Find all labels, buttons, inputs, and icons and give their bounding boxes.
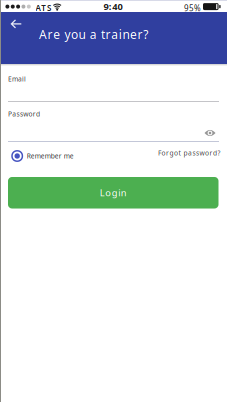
staticText: 9:40 [103, 0, 123, 13]
button[interactable]: Back [0, 13, 28, 35]
staticText: Login [100, 187, 127, 199]
button[interactable]: Show password [202, 127, 218, 139]
staticText: Are you a trainer? [39, 26, 148, 42]
button[interactable]: Email [8, 74, 219, 102]
button[interactable]: Password [8, 110, 219, 142]
staticText: Password [8, 109, 40, 118]
staticText: Remember me [27, 152, 74, 160]
staticText: ATS [35, 3, 51, 13]
button[interactable]: Login [8, 177, 218, 208]
button[interactable]: Remember me [12, 149, 74, 163]
staticText: Forgot password? [158, 148, 220, 157]
button[interactable]: Forgot password? [156, 146, 222, 159]
staticText: Email [8, 74, 26, 83]
staticText: 95% [184, 3, 201, 13]
